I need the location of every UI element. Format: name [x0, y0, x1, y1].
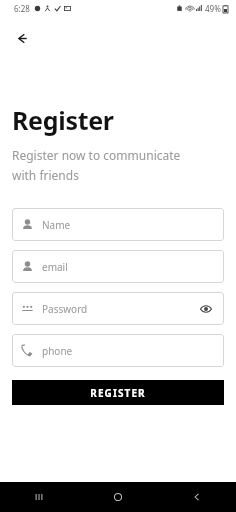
staticText: Name: [42, 218, 215, 232]
button[interactable]: Back: [157, 482, 236, 512]
staticText: email: [42, 260, 215, 274]
staticText: Register now to communicate with friends: [12, 147, 196, 183]
button[interactable]: Home: [78, 482, 157, 512]
button[interactable]: Show password: [197, 300, 215, 318]
staticText: Password: [42, 302, 197, 316]
staticText: 49%: [205, 3, 221, 14]
button[interactable]: Back: [7, 23, 37, 53]
staticText: Register: [12, 103, 114, 137]
staticText: phone: [42, 344, 215, 358]
staticText: 6:28: [14, 3, 30, 14]
staticText: REGISTER: [90, 386, 146, 400]
button[interactable]: Recent apps: [0, 482, 78, 512]
button[interactable]: REGISTER: [12, 380, 224, 405]
button[interactable]: phone: [12, 334, 224, 367]
button[interactable]: Name: [12, 208, 224, 241]
button[interactable]: email: [12, 250, 224, 283]
button[interactable]: Password: [12, 292, 224, 325]
